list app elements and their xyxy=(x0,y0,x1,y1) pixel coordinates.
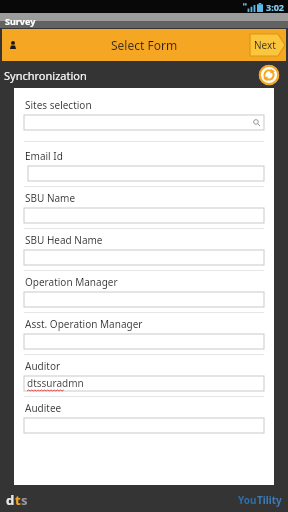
staticText: dtssuradmn xyxy=(27,376,84,390)
button[interactable]: Asst. Operation Manager xyxy=(24,313,264,354)
staticText: Sites selection xyxy=(25,98,92,112)
staticText: Synchronization xyxy=(4,68,87,83)
staticText: Asst. Operation Manager xyxy=(25,317,143,331)
button[interactable]: Sites selection xyxy=(24,98,264,135)
staticText: Operation Manager xyxy=(25,275,118,289)
staticText: s xyxy=(21,491,28,509)
staticText: Tility xyxy=(257,493,282,507)
staticText: Auditor xyxy=(25,359,61,373)
staticText: Next xyxy=(254,38,276,52)
staticText: Auditee xyxy=(25,401,62,415)
button[interactable]: Next xyxy=(250,34,285,56)
button[interactable]: Auditor xyxy=(24,355,264,396)
staticText: 3:02 xyxy=(266,1,284,13)
staticText: Select Form xyxy=(111,37,178,53)
button[interactable]: Operation Manager xyxy=(24,271,264,312)
button[interactable]: SBU Name xyxy=(24,187,264,228)
button[interactable]: SBU Head Name xyxy=(24,229,264,270)
staticText: Email Id xyxy=(25,149,63,163)
button[interactable]: User profile xyxy=(5,37,21,53)
staticText: d xyxy=(6,491,15,509)
button[interactable]: Synchronize xyxy=(259,65,279,85)
staticText: SBU Name xyxy=(25,191,76,205)
button[interactable]: Email Id xyxy=(24,142,264,186)
staticText: Survey xyxy=(5,15,36,27)
staticText: SBU Head Name xyxy=(25,233,103,247)
staticText: t xyxy=(15,491,21,509)
button[interactable]: Auditee xyxy=(24,397,264,438)
staticText: You xyxy=(238,493,257,507)
